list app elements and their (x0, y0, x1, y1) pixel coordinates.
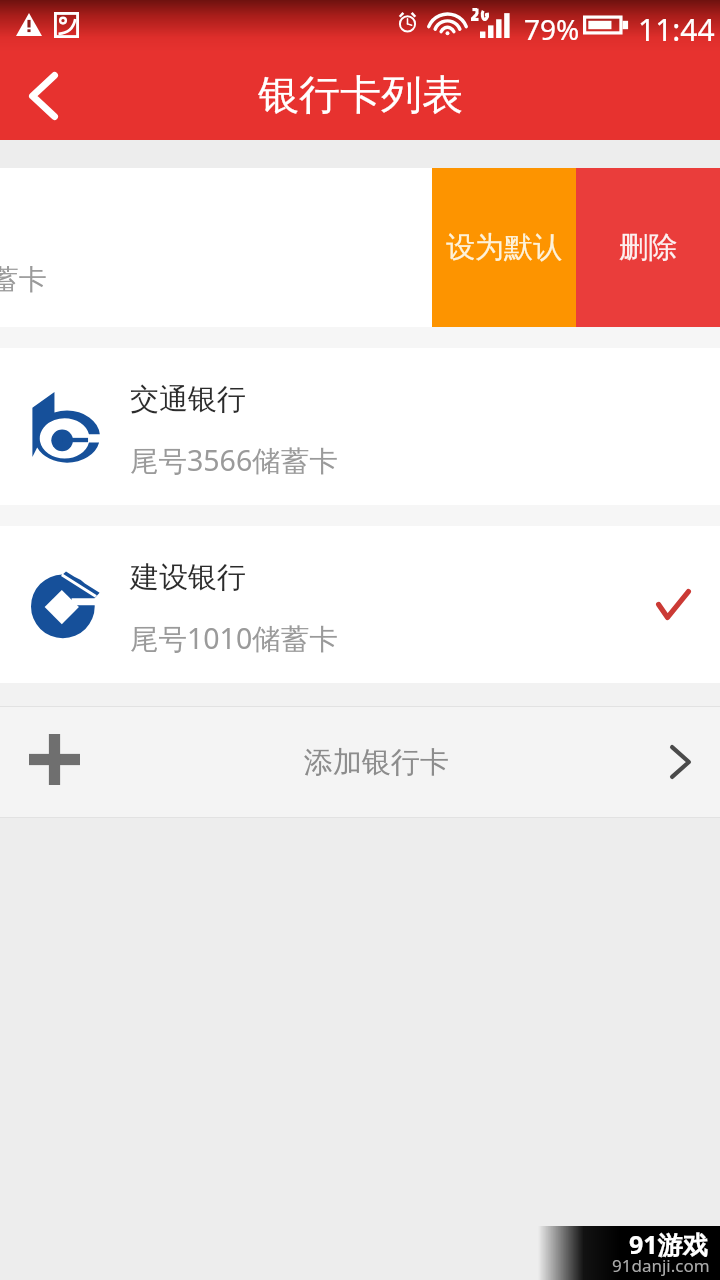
staticText: 尾号3566储蓄卡 (130, 441, 338, 480)
staticText: 银行卡列表 (258, 70, 463, 122)
staticText: 11:44 (638, 9, 715, 50)
button[interactable]: 删除 (576, 168, 720, 327)
staticText: 尾号1010储蓄卡 (130, 619, 338, 658)
staticText: 交通银行 (130, 381, 246, 418)
button[interactable]: 建设银行 (0, 526, 720, 683)
staticText: 79% (524, 10, 580, 48)
button[interactable]: Back (0, 52, 88, 140)
staticText: 91游戏 (629, 1227, 708, 1261)
button[interactable]: 添加银行卡 (0, 707, 720, 817)
staticText: 添加银行卡 (304, 744, 449, 781)
staticText: 91danji.com (612, 1254, 710, 1277)
button[interactable]: 交通银行 (0, 348, 720, 505)
staticText: 尾号8888储蓄卡 (0, 259, 48, 297)
button[interactable]: 设为默认 (432, 168, 576, 327)
staticText: 设为默认 (446, 229, 562, 266)
staticText: 建设银行 (130, 559, 246, 596)
staticText: 删除 (619, 229, 677, 266)
